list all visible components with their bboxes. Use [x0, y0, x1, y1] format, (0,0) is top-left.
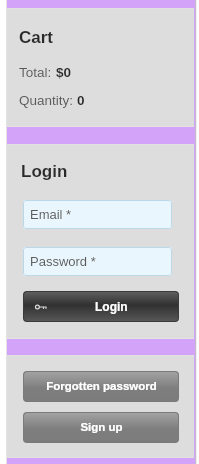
button[interactable]: Sign up [24, 413, 178, 442]
staticText: Sign up [80, 421, 123, 434]
other: Login key [35, 301, 51, 313]
staticText: Cart [19, 28, 54, 47]
staticText: Password * [30, 254, 96, 269]
staticText: $0 [56, 65, 72, 80]
staticText: Login [21, 162, 68, 181]
button[interactable]: Login [24, 292, 178, 321]
button[interactable]: Password * [23, 247, 172, 276]
staticText: Forgotten password [46, 380, 157, 393]
staticText: Email * [30, 207, 72, 222]
button[interactable]: Forgotten password [24, 372, 178, 401]
staticText: Total: [19, 65, 56, 80]
button[interactable]: Email * [23, 200, 172, 229]
staticText: 0 [77, 93, 85, 108]
staticText: Login [95, 300, 128, 313]
staticText: Quantity: [19, 93, 77, 108]
